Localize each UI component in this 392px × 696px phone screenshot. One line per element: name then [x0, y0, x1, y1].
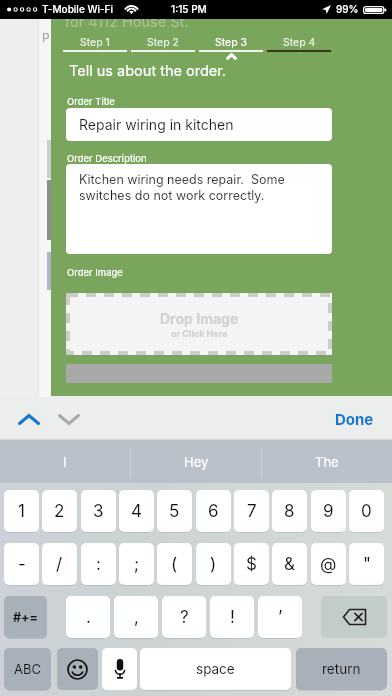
- staticText: ’: [278, 607, 283, 628]
- button[interactable]: @: [311, 543, 346, 585]
- staticText: switches do not work correctly.: [79, 188, 265, 203]
- staticText: :: [96, 554, 101, 575]
- staticText: &: [284, 554, 295, 575]
- staticText: 7: [247, 501, 257, 522]
- staticText: The: [315, 454, 339, 470]
- staticText: .: [86, 607, 91, 628]
- staticText: Step 2: [147, 36, 179, 49]
- staticText: Kitchen wiring needs repair. Some: [79, 172, 285, 187]
- staticText: T-Mobile Wi-Fi: [42, 3, 114, 15]
- button[interactable]: Backspace: [321, 596, 387, 638]
- button[interactable]: ?: [162, 596, 206, 638]
- button[interactable]: .: [66, 596, 110, 638]
- button[interactable]: ;: [119, 543, 154, 585]
- button[interactable]: (: [157, 543, 192, 585]
- button[interactable]: 8: [272, 490, 307, 532]
- staticText: space: [196, 661, 235, 677]
- staticText: Repair wiring in kitchen: [79, 116, 234, 133]
- button[interactable]: ABC: [4, 648, 51, 690]
- staticText: 8: [284, 501, 295, 522]
- button[interactable]: Step 3: [197, 32, 265, 62]
- staticText: 2: [54, 501, 65, 522]
- staticText: for 4112 House St.: [65, 13, 189, 31]
- staticText: Step 4: [283, 36, 316, 49]
- button[interactable]: Kitchen wiring needs repair. Some: [66, 164, 332, 254]
- button[interactable]: ’: [258, 596, 302, 638]
- button[interactable]: 5: [157, 490, 192, 532]
- button[interactable]: 4: [119, 490, 154, 532]
- button[interactable]: $: [234, 543, 269, 585]
- staticText: Order Description: [67, 153, 147, 164]
- button[interactable]: &: [272, 543, 307, 585]
- staticText: 6: [208, 501, 219, 522]
- button[interactable]: Repair wiring in kitchen: [66, 108, 332, 141]
- staticText: #+=: [13, 610, 39, 625]
- staticText: (: [171, 554, 178, 575]
- staticText: Order Image: [67, 267, 123, 278]
- staticText: ?: [180, 607, 189, 628]
- staticText: !: [230, 607, 235, 628]
- staticText: $: [246, 554, 257, 575]
- button[interactable]: /: [42, 543, 77, 585]
- staticText: 5: [169, 501, 180, 522]
- button[interactable]: Drop Image: [66, 293, 332, 355]
- button[interactable]: 3: [81, 490, 116, 532]
- button[interactable]: Emoji: [57, 648, 98, 690]
- staticText: I: [63, 454, 67, 470]
- button[interactable]: Next field: [52, 404, 86, 434]
- button[interactable]: #+=: [4, 596, 47, 638]
- button[interactable]: Dictation: [102, 648, 137, 690]
- button[interactable]: 6: [196, 490, 231, 532]
- button[interactable]: Hey: [131, 440, 261, 483]
- button[interactable]: Step 4: [265, 32, 333, 62]
- staticText: Step 3: [215, 36, 248, 49]
- button[interactable]: Step 1: [61, 32, 129, 62]
- staticText: 1:15 PM: [171, 3, 207, 15]
- button[interactable]: The: [262, 440, 392, 483]
- staticText: @: [320, 554, 337, 575]
- staticText: P: [42, 30, 50, 45]
- button[interactable]: ,: [114, 596, 158, 638]
- staticText: 1: [18, 501, 25, 522]
- staticText: Order Title: [67, 96, 115, 107]
- button[interactable]: 7: [234, 490, 269, 532]
- staticText: Tell us about the order.: [69, 62, 227, 80]
- staticText: 99%: [336, 3, 359, 15]
- button[interactable]: ": [349, 543, 384, 585]
- staticText: ;: [134, 554, 140, 575]
- button[interactable]: 9: [311, 490, 346, 532]
- staticText: -: [18, 554, 26, 575]
- button[interactable]: Done: [335, 410, 374, 428]
- staticText: return: [322, 661, 361, 677]
- staticText: Done: [335, 410, 374, 428]
- staticText: ": [363, 554, 371, 575]
- button[interactable]: Step 2: [129, 32, 197, 62]
- button[interactable]: ): [196, 543, 231, 585]
- button[interactable]: -: [4, 543, 39, 585]
- staticText: ABC: [14, 661, 41, 677]
- button[interactable]: 2: [42, 490, 77, 532]
- button[interactable]: Previous field: [12, 404, 46, 434]
- staticText: Drop Image: [160, 310, 239, 327]
- button[interactable]: I: [0, 440, 130, 483]
- staticText: 3: [93, 501, 104, 522]
- button[interactable]: !: [210, 596, 254, 638]
- staticText: 0: [361, 501, 372, 522]
- staticText: ,: [134, 607, 139, 628]
- staticText: Hey: [184, 454, 209, 470]
- staticText: Step 1: [80, 36, 110, 49]
- button[interactable]: 0: [349, 490, 384, 532]
- button[interactable]: :: [81, 543, 116, 585]
- button[interactable]: return: [296, 648, 387, 690]
- staticText: 4: [131, 501, 142, 522]
- staticText: ): [210, 554, 217, 575]
- button[interactable]: 1: [4, 490, 39, 532]
- staticText: 9: [323, 501, 334, 522]
- staticText: /: [56, 554, 63, 575]
- button[interactable]: space: [140, 648, 291, 690]
- staticText: or Click Here: [171, 328, 228, 339]
